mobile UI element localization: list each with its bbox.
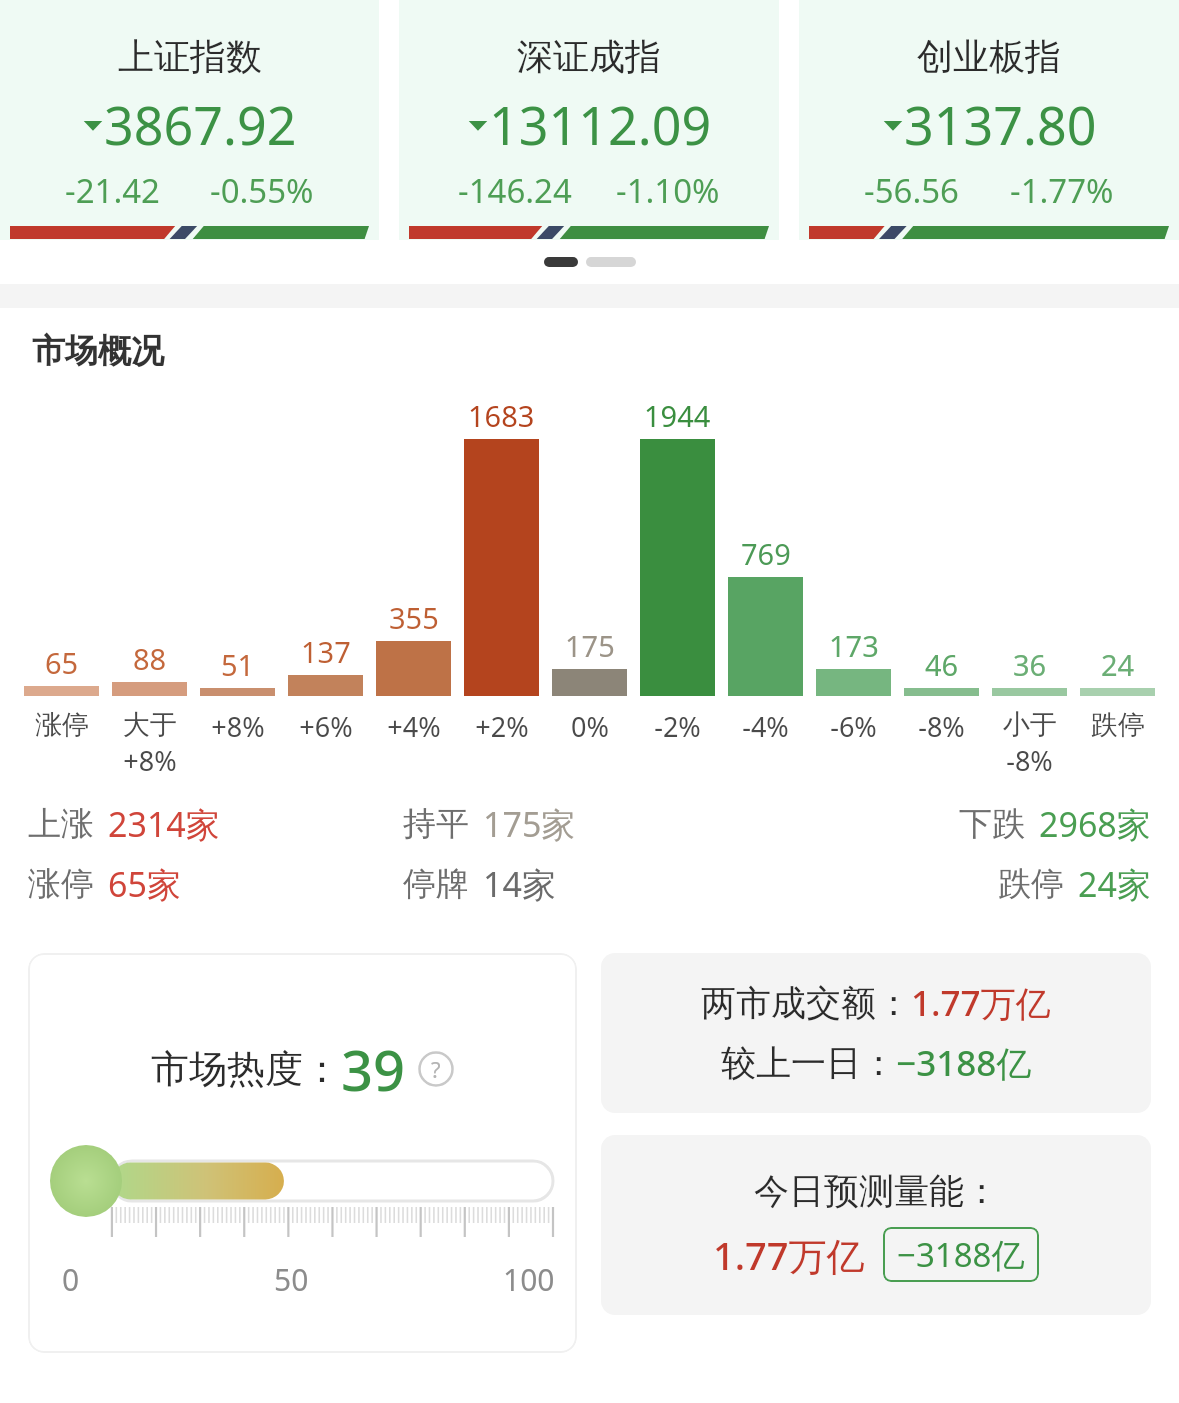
staticText: -1.10% xyxy=(616,168,720,213)
staticText: −3188亿 xyxy=(896,1039,1032,1087)
staticText: −3188亿 xyxy=(897,1232,1025,1277)
staticText: 停牌 xyxy=(403,863,469,905)
staticText: -8% xyxy=(918,708,965,745)
button[interactable]: 创业板指 xyxy=(799,0,1179,240)
staticText: 355 xyxy=(389,598,439,637)
staticText: 51 xyxy=(221,645,255,684)
staticText: -146.24 xyxy=(458,168,572,213)
button[interactable]: 两市成交额： xyxy=(601,953,1151,1113)
staticText: -4% xyxy=(742,708,789,745)
staticText: 14家 xyxy=(483,861,556,907)
staticText: 持平 xyxy=(403,803,469,845)
button[interactable]: 上证指数 xyxy=(0,0,379,240)
staticText: 创业板指 xyxy=(917,34,1061,79)
staticText: 跌停 xyxy=(1091,708,1145,742)
staticText: 137 xyxy=(301,632,351,671)
staticText: 较上一日： xyxy=(721,1041,896,1085)
staticText: -1.77% xyxy=(1010,168,1114,213)
staticText: 2314家 xyxy=(108,801,220,847)
staticText: 上证指数 xyxy=(118,34,262,79)
staticText: 36 xyxy=(1013,645,1047,684)
staticText: 1.77万亿 xyxy=(911,979,1051,1027)
staticText: 769 xyxy=(741,534,791,573)
staticText: +4% xyxy=(387,708,441,745)
staticText: 175家 xyxy=(483,801,576,847)
staticText: 跌停 xyxy=(998,863,1064,905)
staticText: 88 xyxy=(133,639,167,678)
button[interactable]: 市场热度： xyxy=(28,953,577,1353)
staticText: 65 xyxy=(45,643,79,682)
staticText: 小于 xyxy=(1003,708,1057,742)
staticText: 46 xyxy=(925,645,959,684)
staticText: +2% xyxy=(475,708,529,745)
staticText: -2% xyxy=(654,708,701,745)
staticText: 上涨 xyxy=(28,803,94,845)
staticText: 涨停 xyxy=(35,708,89,742)
staticText: 1944 xyxy=(644,396,711,435)
staticText: 39 xyxy=(341,1031,406,1107)
staticText: 市场热度： xyxy=(151,1045,341,1093)
staticText: -21.42 xyxy=(65,168,160,213)
staticText: +6% xyxy=(299,708,353,745)
staticText: 市场概况 xyxy=(32,330,164,372)
staticText: 65家 xyxy=(108,861,181,907)
button[interactable]: Help about market heat xyxy=(418,1051,454,1087)
staticText: 173 xyxy=(829,626,879,665)
staticText: 0 xyxy=(62,1259,80,1300)
button[interactable]: 今日预测量能： xyxy=(601,1135,1151,1315)
staticText: 大于 xyxy=(123,708,177,742)
staticText: 50 xyxy=(274,1259,309,1300)
staticText: 1.77万亿 xyxy=(713,1229,865,1281)
staticText: -6% xyxy=(830,708,877,745)
staticText: -0.55% xyxy=(210,168,314,213)
staticText: 两市成交额： xyxy=(701,981,911,1025)
staticText: -56.56 xyxy=(864,168,959,213)
staticText: 0% xyxy=(571,708,609,745)
staticText: 24 xyxy=(1101,645,1135,684)
staticText: 今日预测量能： xyxy=(754,1169,999,1213)
staticText: 涨停 xyxy=(28,863,94,905)
staticText: 100 xyxy=(503,1259,555,1300)
staticText: 下跌 xyxy=(959,803,1025,845)
staticText: 2968家 xyxy=(1039,801,1151,847)
staticText: 3137.80 xyxy=(904,89,1097,160)
staticText: -8% xyxy=(1006,742,1053,779)
staticText: 3867.92 xyxy=(104,89,297,160)
staticText: 175 xyxy=(565,626,615,665)
button[interactable]: 深证成指 xyxy=(399,0,779,240)
staticText: +8% xyxy=(211,708,265,745)
staticText: 深证成指 xyxy=(517,34,661,79)
staticText: 1683 xyxy=(468,396,535,435)
staticText: +8% xyxy=(123,742,177,779)
staticText: 13112.09 xyxy=(489,89,712,160)
staticText: 24家 xyxy=(1078,861,1151,907)
staticText: ? xyxy=(431,1054,441,1084)
